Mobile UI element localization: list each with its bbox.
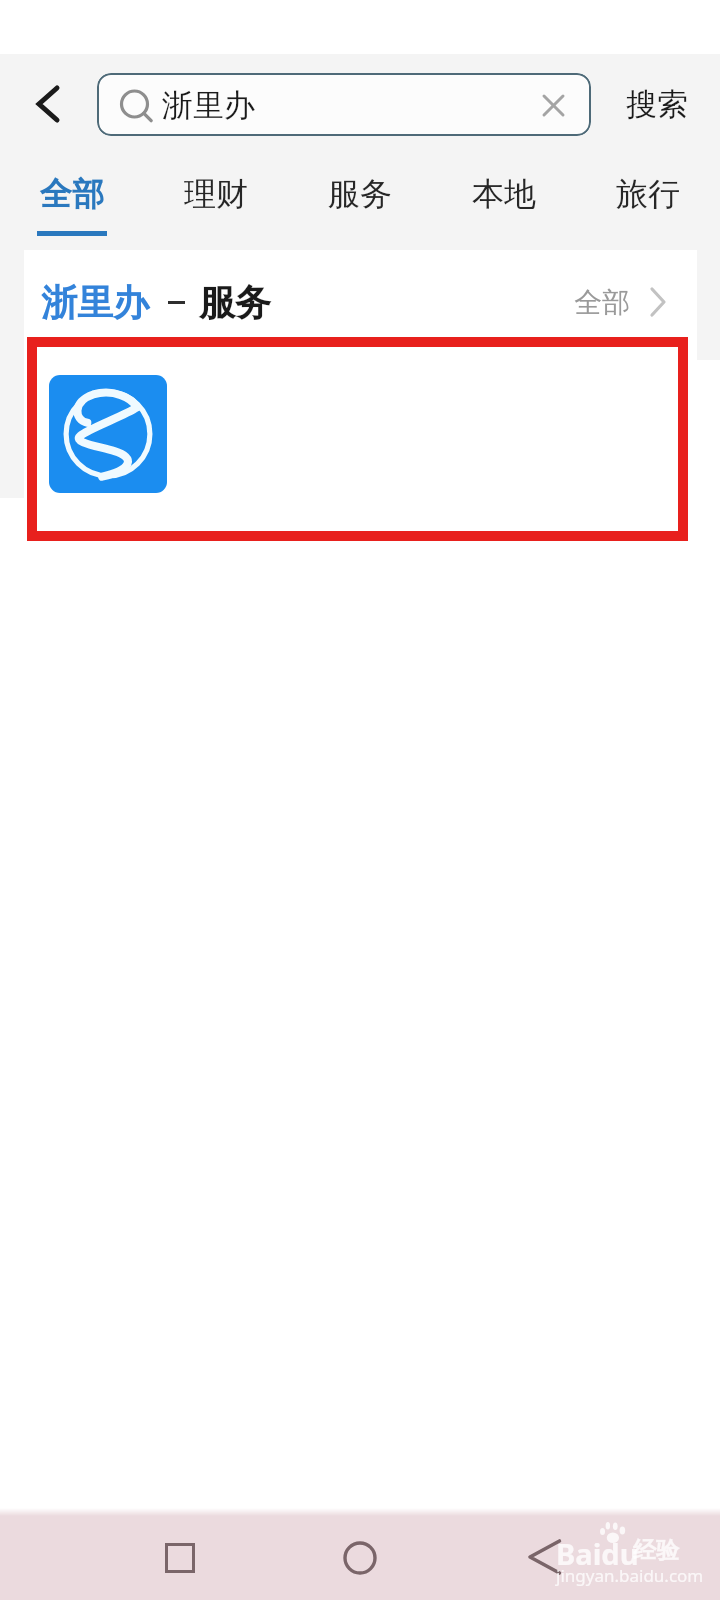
staticText: 服务 <box>199 280 271 325</box>
staticText: 本地 <box>472 174 536 214</box>
staticText: 全部 <box>574 285 630 320</box>
staticText: jingyan.baidu.com <box>556 1564 704 1587</box>
button[interactable]: 理财 <box>144 168 288 220</box>
button[interactable]: Back <box>530 1541 562 1573</box>
button[interactable]: Recent apps <box>165 1543 195 1573</box>
staticText: 经验 <box>633 1536 679 1565</box>
button[interactable]: Back <box>20 76 76 132</box>
button[interactable]: 浙里办 app <box>49 375 167 493</box>
staticText: Baidu <box>556 1534 639 1573</box>
button[interactable]: 服务 <box>288 168 432 220</box>
staticText: 理财 <box>184 174 248 214</box>
staticText: 浙里办 <box>162 86 255 125</box>
button[interactable]: 浙里办 <box>41 276 666 328</box>
button[interactable]: 旅行 <box>576 168 720 220</box>
button[interactable]: 搜索 <box>610 73 704 136</box>
button[interactable]: 全部 <box>0 168 144 220</box>
staticText: 搜索 <box>626 85 688 124</box>
button[interactable]: 本地 <box>432 168 576 220</box>
staticText: 旅行 <box>616 174 680 214</box>
staticText: 服务 <box>328 174 392 214</box>
button[interactable]: Home <box>343 1541 377 1575</box>
button[interactable]: 浙里办 <box>97 73 591 136</box>
button[interactable]: Clear text <box>534 86 572 124</box>
staticText: 浙里办 <box>41 280 149 325</box>
staticText: 全部 <box>40 174 104 214</box>
